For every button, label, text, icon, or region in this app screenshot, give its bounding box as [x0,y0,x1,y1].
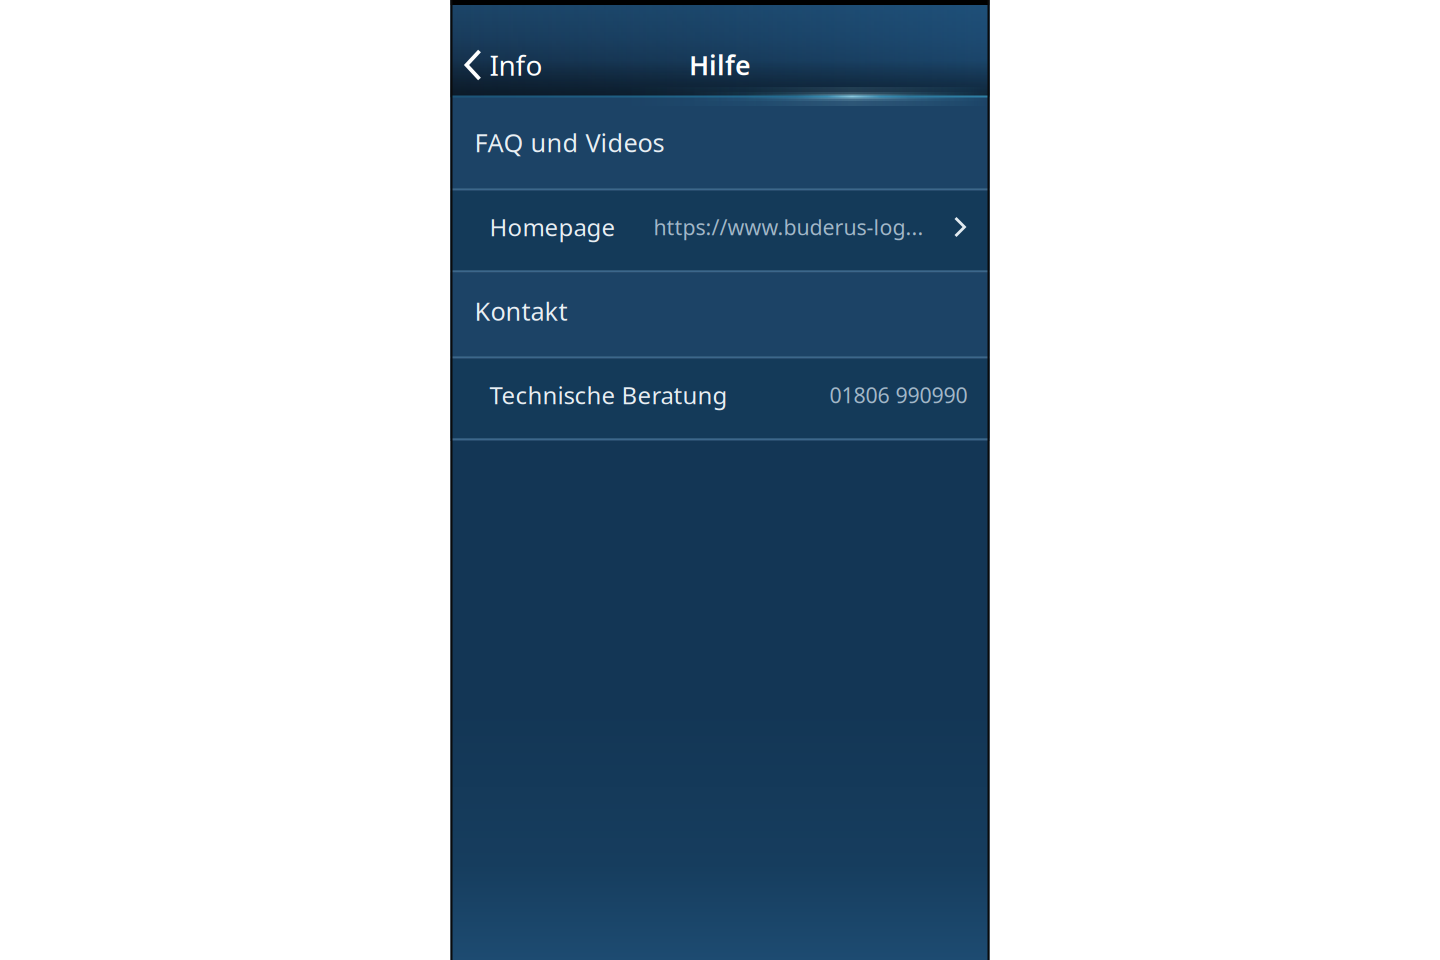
staticText: Homepage [489,211,615,243]
button[interactable]: Technische Beratung [450,359,989,438]
staticText: Info [489,46,542,84]
button[interactable]: Homepage [450,191,989,270]
staticText: Technische Beratung [489,379,727,411]
staticText: Hilfe [689,47,751,83]
staticText: FAQ und Videos [474,126,664,159]
staticText: Kontakt [474,294,567,328]
staticText: 01806 990990 [829,381,967,409]
staticText: https://www.buderus-log... [653,213,923,241]
button[interactable]: Info [450,39,542,91]
